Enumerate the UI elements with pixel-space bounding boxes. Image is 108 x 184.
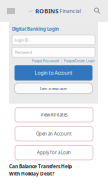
staticText: Password xyxy=(14,49,31,55)
button[interactable]: Forgot/Create Login xyxy=(64,59,95,63)
staticText: ROBINS xyxy=(35,7,58,15)
button[interactable]: Search xyxy=(90,0,108,21)
staticText: Open an Account xyxy=(36,131,72,137)
button[interactable]: Menu xyxy=(0,0,19,21)
staticText: I am a new user xyxy=(39,86,67,91)
button[interactable]: Login to Account xyxy=(14,65,92,80)
staticText: With Holiday Debt? xyxy=(9,170,54,177)
button[interactable]: Apply for a Loan xyxy=(15,145,93,160)
button[interactable]: Can Balance Transfers Help xyxy=(0,163,108,184)
staticText: View All Rates xyxy=(40,112,67,118)
staticText: Forgot Password xyxy=(32,59,59,63)
button[interactable]: I am a new user xyxy=(14,83,92,94)
staticText: Apply for a Loan xyxy=(37,150,71,156)
staticText: Login ID xyxy=(14,37,28,43)
staticText: Can Balance Transfers Help xyxy=(9,163,72,170)
staticText: Financial xyxy=(59,7,80,15)
button[interactable]: View All Rates xyxy=(15,108,93,122)
staticText: Forgot/Create Login xyxy=(64,59,95,63)
staticText: | xyxy=(60,59,62,63)
staticText: Digital Banking Login xyxy=(12,26,59,32)
button[interactable]: Forgot Password xyxy=(32,59,59,63)
staticText: Login to Account xyxy=(34,69,72,76)
button[interactable]: Open an Account xyxy=(15,127,93,141)
